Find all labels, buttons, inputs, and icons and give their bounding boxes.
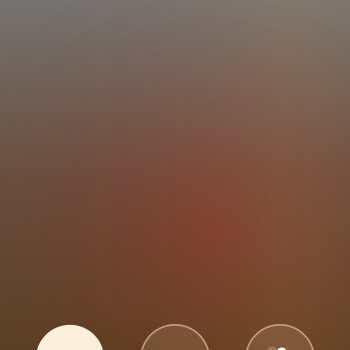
button[interactable]: Your Memoji [36, 325, 104, 350]
button[interactable]: Memoji 3 [246, 325, 314, 350]
button[interactable]: Memoji 2 [141, 325, 209, 350]
